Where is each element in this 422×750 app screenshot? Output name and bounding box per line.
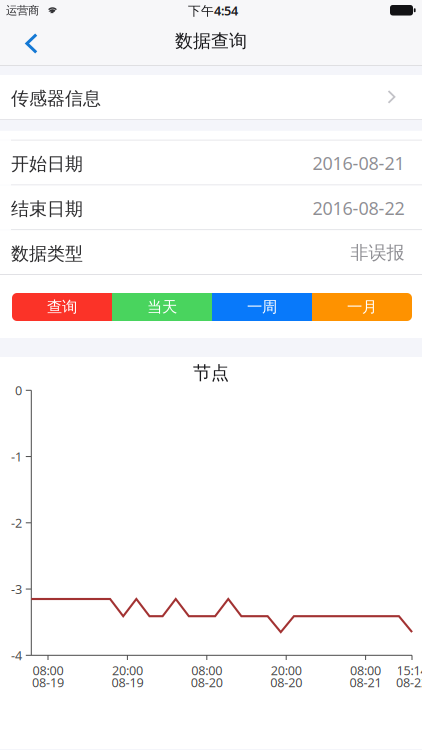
staticText: 一月 xyxy=(347,297,377,317)
staticText: 数据查询 xyxy=(175,30,247,52)
staticText: 当天 xyxy=(147,297,177,317)
staticText: 15:14 xyxy=(396,662,422,679)
staticText: -1 xyxy=(11,448,22,465)
staticText: 0 xyxy=(15,382,22,399)
staticText: 08-19 xyxy=(111,674,143,691)
button[interactable]: 当天 xyxy=(112,293,212,321)
staticText: 查询 xyxy=(47,297,77,317)
staticText: 传感器信息 xyxy=(11,87,101,110)
staticText: 08-20 xyxy=(191,674,223,691)
staticText: 08-21 xyxy=(350,674,382,691)
staticText: 运营商 xyxy=(6,3,39,18)
staticText: 数据类型 xyxy=(11,242,83,265)
staticText: 08:00 xyxy=(191,662,222,679)
staticText: 08:00 xyxy=(350,662,381,679)
staticText: -3 xyxy=(11,580,22,598)
staticText: 结束日期 xyxy=(11,198,83,220)
button[interactable]: 开始日期 xyxy=(0,141,422,185)
staticText: 08-22 xyxy=(396,674,422,691)
staticText: 2016-08-22 xyxy=(312,196,404,220)
staticText: 非误报 xyxy=(350,241,404,264)
staticText: 20:00 xyxy=(112,662,143,679)
button[interactable]: 返回 xyxy=(9,21,53,66)
button[interactable]: 结束日期 xyxy=(0,185,422,229)
staticText: 下午4:54 xyxy=(188,2,238,19)
button[interactable]: 一周 xyxy=(212,293,312,321)
staticText: 08-19 xyxy=(32,674,64,691)
staticText: 节点 xyxy=(193,362,229,384)
staticText: 2016-08-21 xyxy=(312,151,404,175)
staticText: 一周 xyxy=(247,297,277,317)
button[interactable]: 一月 xyxy=(312,293,412,321)
staticText: 08-20 xyxy=(270,674,302,691)
button[interactable]: 查询 xyxy=(12,293,112,321)
staticText: 08:00 xyxy=(32,662,63,679)
button[interactable]: 传感器信息 xyxy=(0,75,422,119)
staticText: 开始日期 xyxy=(11,153,83,175)
staticText: 20:00 xyxy=(271,662,302,679)
button[interactable]: 数据类型 xyxy=(0,230,422,274)
staticText: -4 xyxy=(11,647,22,664)
staticText: -2 xyxy=(11,514,22,531)
